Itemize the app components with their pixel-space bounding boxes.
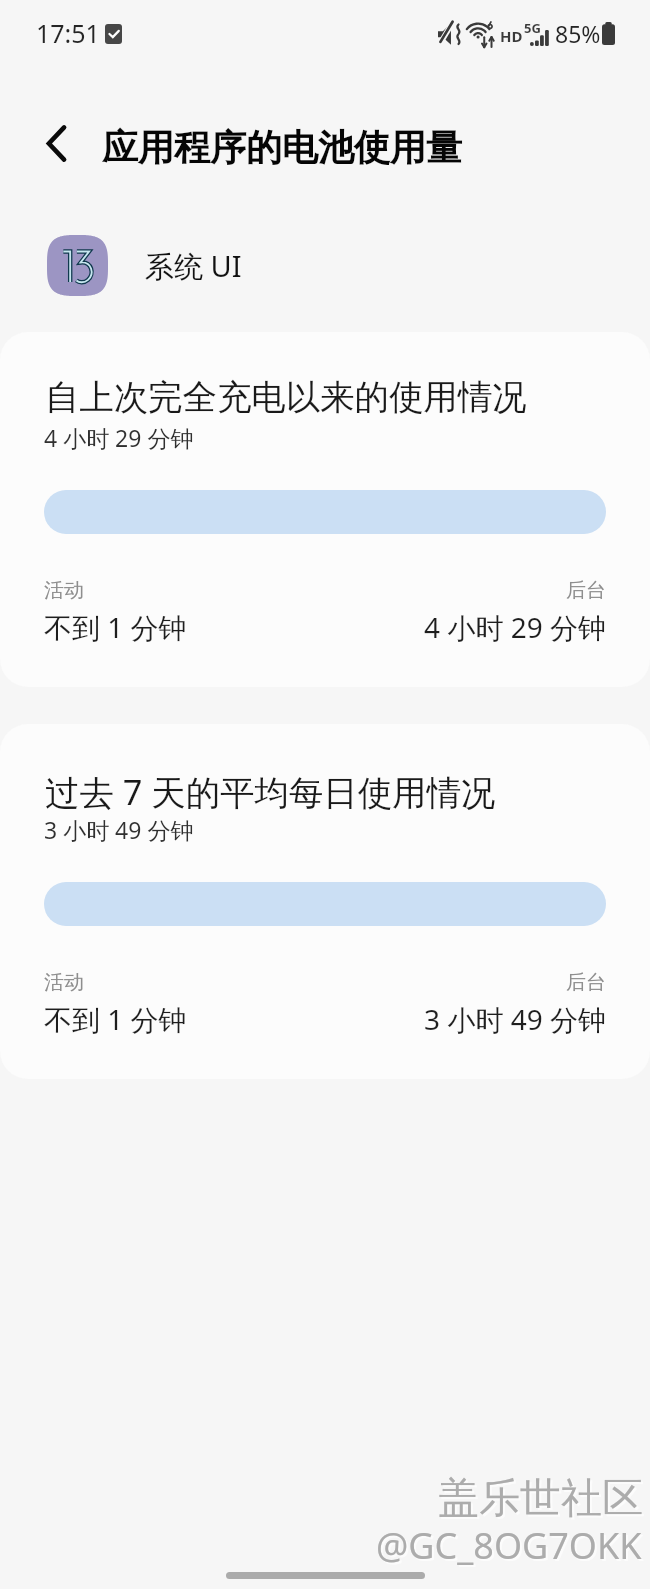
staticText: 3 小时 49 分钟 xyxy=(44,814,194,845)
staticText: 活动 xyxy=(44,578,84,603)
button[interactable]: Back xyxy=(28,115,84,171)
other: Battery xyxy=(602,22,615,45)
staticText: 盖乐世社区 xyxy=(440,1475,645,1527)
button[interactable]: 自上次完全充电以来的使用情况 xyxy=(0,332,650,687)
other: Signal xyxy=(530,26,550,46)
staticText: 5G xyxy=(524,19,541,37)
staticText: 17:51 xyxy=(36,16,100,50)
staticText: 4 小时 29 分钟 xyxy=(44,422,194,453)
staticText: 3 小时 49 分钟 xyxy=(424,1000,606,1038)
staticText: 系统 UI xyxy=(145,246,242,286)
other: Sound off xyxy=(438,20,465,48)
staticText: HD xyxy=(500,26,523,46)
staticText: 不到 1 分钟 xyxy=(44,608,187,646)
button[interactable]: 系统 UI xyxy=(0,215,650,315)
staticText: 自上次完全充电以来的使用情况 xyxy=(45,376,527,419)
staticText: 85% xyxy=(555,18,601,49)
staticText: 过去 7 天的平均每日使用情况 xyxy=(45,768,496,815)
other: Wi-Fi xyxy=(468,20,496,48)
staticText: 后台 xyxy=(566,970,606,995)
staticText: 后台 xyxy=(566,578,606,603)
staticText: 不到 1 分钟 xyxy=(44,1000,187,1038)
button[interactable]: 过去 7 天的平均每日使用情况 xyxy=(0,724,650,1079)
staticText: 盖乐世社区 xyxy=(438,1473,643,1525)
staticText: 活动 xyxy=(44,970,84,995)
staticText: 4 小时 29 分钟 xyxy=(424,608,606,646)
staticText: 应用程序的电池使用量 xyxy=(102,125,462,170)
staticText: @GC_8OG7OKK xyxy=(378,1523,644,1572)
staticText: @GC_8OG7OKK xyxy=(376,1521,642,1570)
